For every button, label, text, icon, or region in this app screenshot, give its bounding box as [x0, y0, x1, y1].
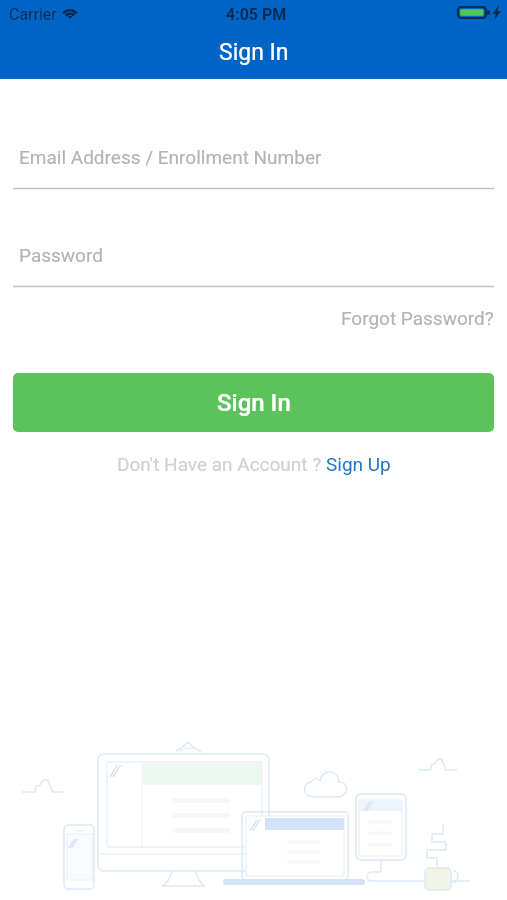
- button[interactable]: Sign In: [13, 373, 494, 432]
- staticText: 4:05 PM: [226, 5, 287, 24]
- staticText: Password: [19, 244, 103, 266]
- staticText: Sign In: [217, 389, 291, 417]
- button[interactable]: Sign Up: [326, 453, 391, 475]
- button[interactable]: Forgot Password?: [341, 307, 494, 329]
- staticText: Sign In: [219, 39, 289, 66]
- staticText: Don't Have an Account ?: [117, 453, 326, 475]
- staticText: Carrier: [9, 5, 57, 24]
- staticText: Email Address / Enrollment Number: [19, 146, 322, 168]
